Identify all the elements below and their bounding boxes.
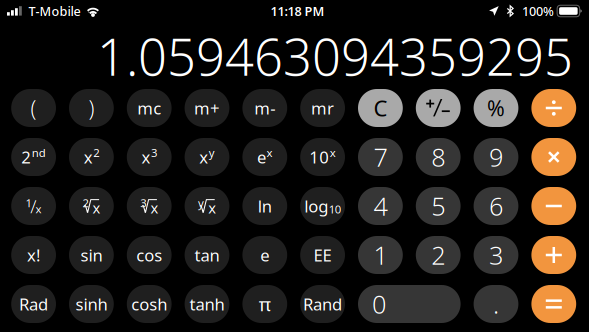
staticText: 4 <box>373 189 387 223</box>
button[interactable]: C <box>358 89 403 127</box>
button[interactable]: ln <box>242 187 287 225</box>
button[interactable]: 8 <box>416 138 461 176</box>
staticText: x! <box>27 244 40 266</box>
staticText: 1 <box>25 195 31 211</box>
staticText: mr <box>311 97 334 119</box>
staticText: e <box>260 244 269 266</box>
button[interactable]: log <box>300 187 345 225</box>
staticText: y <box>198 195 204 210</box>
button[interactable]: cos <box>127 236 172 274</box>
staticText: π <box>259 291 271 317</box>
staticText: 2 <box>93 145 99 160</box>
staticText: tanh <box>189 293 224 315</box>
staticText: cos <box>136 244 162 266</box>
staticText: Rand <box>303 293 342 315</box>
button[interactable]: 3 <box>474 236 518 274</box>
staticText: 3 <box>151 145 157 160</box>
staticText: e <box>257 146 266 168</box>
staticText: sinh <box>75 293 107 315</box>
button[interactable]: e <box>242 236 287 274</box>
staticText: tan <box>194 244 219 266</box>
staticText: x <box>93 198 101 218</box>
staticText: 2 <box>82 195 88 210</box>
button[interactable]: ( <box>11 89 56 127</box>
button[interactable]: sin <box>69 236 114 274</box>
staticText: / <box>30 194 36 218</box>
button[interactable]: Multiply <box>531 138 576 176</box>
staticText: ) <box>88 93 94 123</box>
button[interactable]: e <box>242 138 287 176</box>
staticText: 8 <box>431 140 445 174</box>
button[interactable]: 6 <box>474 187 518 225</box>
staticText: 2 <box>431 238 445 272</box>
button[interactable]: Add <box>531 236 576 274</box>
button[interactable]: Toggle sign <box>416 89 461 127</box>
staticText: x <box>84 146 93 168</box>
staticText: 5 <box>431 189 445 223</box>
staticText: EE <box>314 244 332 266</box>
button[interactable]: x <box>127 138 172 176</box>
button[interactable]: 4 <box>358 187 403 225</box>
staticText: ln <box>258 195 272 217</box>
staticText: nd <box>32 145 46 160</box>
staticText: 100% <box>522 2 554 20</box>
button[interactable]: Rand <box>300 285 345 323</box>
button[interactable]: y <box>185 187 229 225</box>
button[interactable]: mc <box>127 89 172 127</box>
staticText: m- <box>254 97 275 119</box>
staticText: m+ <box>194 97 220 119</box>
staticText: 11:18 PM <box>270 2 324 20</box>
button[interactable]: m+ <box>185 89 229 127</box>
button[interactable]: 1 <box>11 187 56 225</box>
button[interactable]: . <box>474 285 518 323</box>
button[interactable]: 2 <box>416 236 461 274</box>
staticText: x <box>35 201 41 216</box>
button[interactable]: 0 <box>358 285 461 323</box>
staticText: 0 <box>372 287 386 321</box>
button[interactable]: π <box>242 285 287 323</box>
button[interactable]: x <box>185 138 229 176</box>
button[interactable]: Divide <box>531 89 576 127</box>
staticText: x <box>199 146 208 168</box>
staticText: mc <box>137 97 161 119</box>
staticText: 9 <box>489 140 503 174</box>
button[interactable]: m- <box>242 89 287 127</box>
button[interactable]: x <box>69 138 114 176</box>
button[interactable]: 5 <box>416 187 461 225</box>
button[interactable]: 10 <box>300 138 345 176</box>
button[interactable]: 3 <box>127 187 172 225</box>
button[interactable]: 7 <box>358 138 403 176</box>
button[interactable]: 1 <box>358 236 403 274</box>
button[interactable]: Subtract <box>531 187 576 225</box>
button[interactable]: % <box>474 89 518 127</box>
staticText: x <box>330 145 336 160</box>
button[interactable]: x! <box>11 236 56 274</box>
staticText: T-Mobile <box>28 2 80 20</box>
button[interactable]: sinh <box>69 285 114 323</box>
staticText: 10 <box>309 146 329 168</box>
button[interactable]: 9 <box>474 138 518 176</box>
button[interactable]: 2 <box>69 187 114 225</box>
staticText: 7 <box>373 140 387 174</box>
button[interactable]: ) <box>69 89 114 127</box>
button[interactable]: mr <box>300 89 345 127</box>
staticText: 2 <box>21 146 31 168</box>
button[interactable]: cosh <box>127 285 172 323</box>
staticText: log <box>304 195 328 217</box>
staticText: x <box>208 198 216 218</box>
button[interactable]: Rad <box>11 285 56 323</box>
staticText: Rad <box>19 293 48 315</box>
staticText: sin <box>80 244 102 266</box>
staticText: x <box>150 198 158 218</box>
button[interactable]: 2 <box>11 138 56 176</box>
staticText: C <box>373 93 387 123</box>
staticText: 6 <box>489 189 503 223</box>
staticText: 1.059463094359295 <box>97 21 573 90</box>
button[interactable]: tanh <box>185 285 229 323</box>
staticText: cosh <box>131 293 167 315</box>
button[interactable]: Equals <box>531 285 576 323</box>
button[interactable]: tan <box>185 236 229 274</box>
staticText: 3 <box>140 195 146 210</box>
button[interactable]: EE <box>300 236 345 274</box>
staticText: 10 <box>329 201 341 217</box>
